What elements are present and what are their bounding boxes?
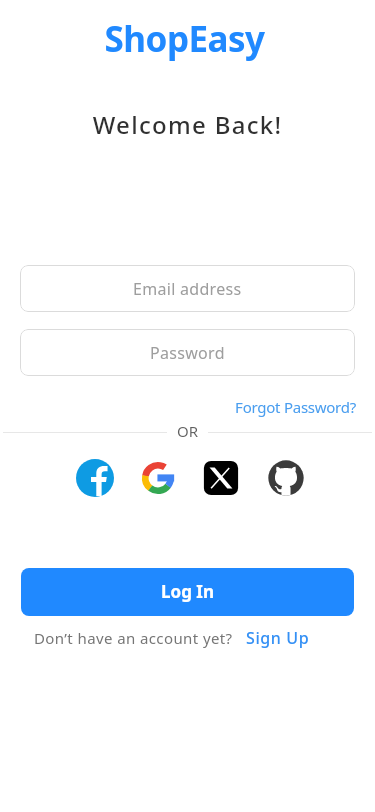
staticText: ShopEasy [0,15,372,63]
staticText: Don’t have an account yet? [34,628,233,648]
button[interactable]: Log In [21,568,354,616]
staticText: Log In [161,580,214,603]
button[interactable]: Forgot Password? [0,397,375,417]
staticText: Welcome Back! [0,108,375,141]
staticText: Email address [133,278,242,300]
button[interactable]: Email address [20,265,355,312]
button[interactable]: Sign in with GitHub [267,459,305,497]
button[interactable]: Sign in with Facebook [76,459,114,497]
button[interactable]: Sign in with X [202,459,240,497]
button[interactable]: Password [20,329,355,376]
button[interactable]: Sign in with Google [139,459,177,497]
staticText: Password [150,342,225,364]
staticText: OR [0,421,375,441]
button[interactable]: Sign Up [246,627,310,649]
